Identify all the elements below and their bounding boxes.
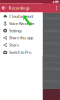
staticText: Voice Recorder (9, 21, 35, 26)
staticText: Recording (44, 80, 59, 83)
button[interactable]: Share this app (0, 34, 42, 41)
staticText: Settings (9, 28, 22, 33)
button[interactable]: Cloud account (0, 13, 42, 20)
button[interactable]: Back (0, 3, 7, 13)
button[interactable]: Share (0, 41, 42, 49)
staticText: Share this app (9, 35, 33, 40)
staticText: Recording (44, 17, 59, 20)
staticText: Recording (44, 54, 59, 58)
staticText: Switch to Pro (9, 49, 31, 55)
button[interactable]: Settings (0, 27, 42, 34)
staticText: Share (9, 42, 19, 48)
button[interactable]: Switch to Pro (0, 49, 42, 56)
button[interactable]: More options (53, 3, 60, 13)
staticText: Cloud account (9, 13, 33, 19)
button[interactable]: Voice Recorder (0, 20, 42, 27)
staticText: Recording (44, 29, 59, 33)
staticText: Recordings (9, 5, 30, 11)
staticText: Recording (44, 42, 59, 45)
staticText: Recording (44, 67, 59, 70)
